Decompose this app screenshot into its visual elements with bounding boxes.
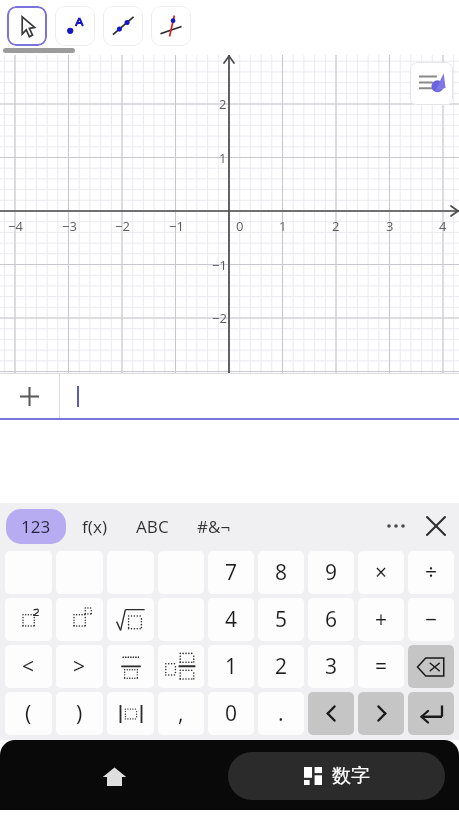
staticText: 8: [275, 558, 288, 587]
staticText: 4: [225, 605, 238, 634]
button[interactable]: Backspace: [408, 645, 454, 688]
staticText: ABC: [136, 515, 169, 538]
staticText: 7: [225, 558, 238, 587]
button[interactable]: Mixed number: [158, 645, 204, 688]
button[interactable]: +: [358, 598, 404, 641]
staticText: 2: [275, 652, 288, 681]
staticText: −2: [212, 309, 227, 327]
staticText: ,: [178, 699, 184, 728]
button[interactable]: 数字: [228, 752, 445, 800]
button[interactable]: .: [258, 692, 304, 735]
button[interactable]: <: [5, 645, 52, 688]
button[interactable]: 123: [6, 509, 66, 544]
button[interactable]: Line through two points: [103, 6, 143, 46]
button[interactable]: Move tool: [7, 6, 47, 46]
button[interactable]: =: [358, 645, 404, 688]
staticText: 3: [386, 217, 394, 235]
button[interactable]: Enter: [408, 692, 454, 735]
button[interactable]: Add expression: [0, 374, 59, 418]
button[interactable]: #&¬: [189, 509, 239, 544]
button[interactable]: Square root: [107, 598, 154, 641]
button[interactable]: (: [5, 692, 52, 735]
button[interactable]: Fraction: [107, 645, 154, 688]
button[interactable]: ,: [158, 692, 204, 735]
staticText: #&¬: [197, 515, 231, 538]
staticText: f(x): [82, 515, 108, 538]
staticText: ×: [375, 558, 388, 587]
button[interactable]: [60, 374, 459, 418]
button[interactable]: 5: [258, 598, 304, 641]
button[interactable]: 6: [308, 598, 354, 641]
staticText: >: [73, 652, 86, 681]
staticText: −2: [115, 217, 130, 235]
staticText: 6: [325, 605, 338, 634]
button[interactable]: f(x): [74, 509, 116, 544]
button[interactable]: Home: [0, 742, 228, 810]
staticText: −1: [212, 256, 227, 274]
staticText: 4: [439, 217, 447, 235]
staticText: ÷: [425, 558, 438, 587]
button[interactable]: >: [56, 645, 103, 688]
button[interactable]: Point tool: [55, 6, 95, 46]
staticText: −3: [62, 217, 77, 235]
button[interactable]: 2: [258, 645, 304, 688]
staticText: 数字: [332, 764, 370, 788]
button[interactable]: Move left: [308, 692, 354, 735]
button[interactable]: Perpendicular line: [151, 6, 191, 46]
button[interactable]: ABC: [128, 509, 177, 544]
staticText: =: [375, 652, 388, 681]
staticText: 3: [325, 652, 338, 681]
staticText: 2: [332, 217, 340, 235]
staticText: +: [375, 605, 388, 634]
button[interactable]: Style bar: [410, 62, 453, 105]
staticText: 5: [275, 605, 288, 634]
staticText: −: [425, 605, 438, 634]
button[interactable]: Square: [5, 598, 52, 641]
staticText: 2: [219, 95, 227, 113]
staticText: 0: [225, 699, 238, 728]
staticText: −1: [169, 217, 184, 235]
button[interactable]: Move right: [358, 692, 404, 735]
staticText: 123: [21, 515, 51, 538]
button[interactable]: 4: [208, 598, 254, 641]
button[interactable]: 7: [208, 551, 254, 594]
staticText: <: [22, 652, 35, 681]
staticText: 1: [225, 652, 238, 681]
button[interactable]: −: [408, 598, 454, 641]
staticText: ): [76, 699, 83, 728]
button[interactable]: 3: [308, 645, 354, 688]
staticText: .: [278, 699, 284, 728]
button[interactable]: 1: [208, 645, 254, 688]
button[interactable]: 8: [258, 551, 304, 594]
staticText: (: [25, 699, 32, 728]
button[interactable]: 0: [208, 692, 254, 735]
staticText: −4: [8, 217, 23, 235]
button[interactable]: ): [56, 692, 103, 735]
button[interactable]: More: [377, 507, 415, 545]
button[interactable]: Absolute value: [107, 692, 154, 735]
button[interactable]: Exponent: [56, 598, 103, 641]
staticText: 0: [236, 217, 244, 235]
staticText: 1: [279, 217, 287, 235]
staticText: 9: [325, 558, 338, 587]
button[interactable]: ×: [358, 551, 404, 594]
button[interactable]: ÷: [408, 551, 454, 594]
staticText: 1: [219, 149, 227, 167]
button[interactable]: Close keyboard: [415, 505, 457, 547]
button[interactable]: 9: [308, 551, 354, 594]
